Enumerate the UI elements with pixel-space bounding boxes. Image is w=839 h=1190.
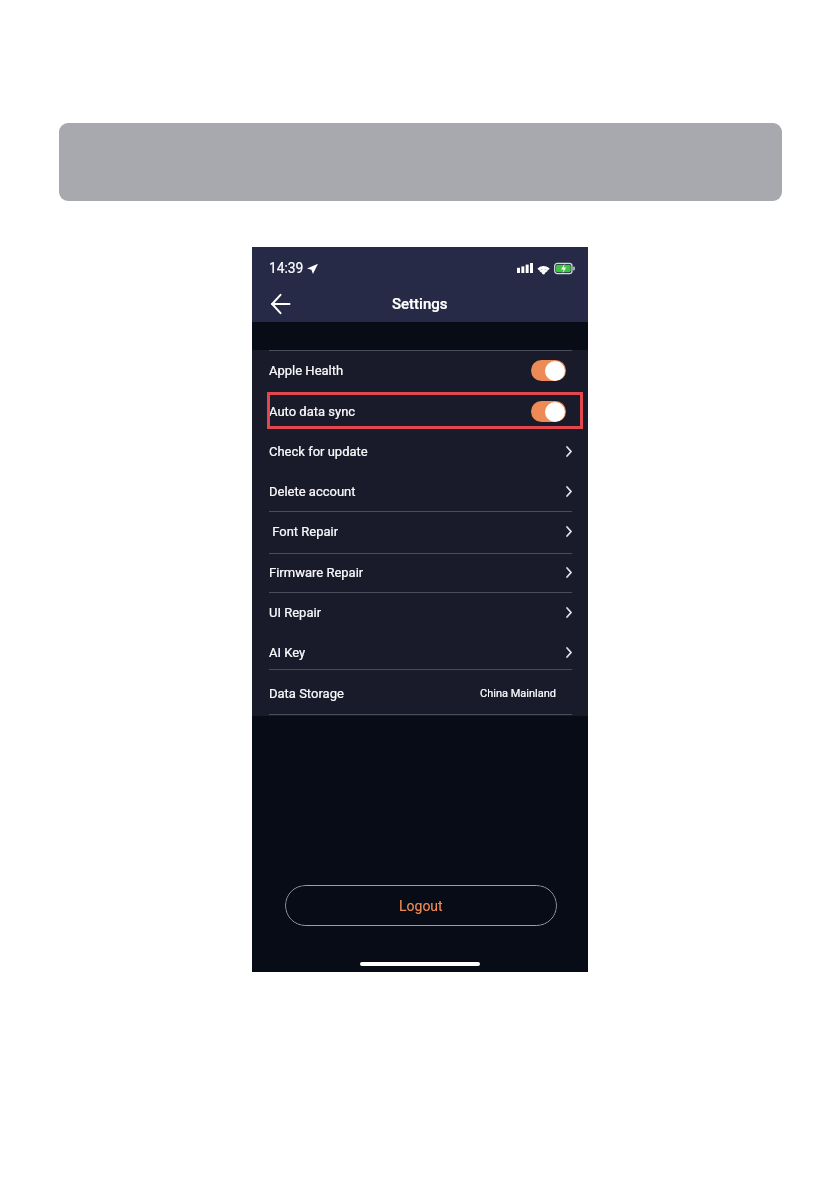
- staticText: Font Repair: [269, 524, 339, 539]
- staticText: China Mainland: [480, 687, 556, 700]
- button[interactable]: Logout: [285, 885, 557, 926]
- staticText: Apple Health: [269, 363, 344, 378]
- button[interactable]: Apple Health: [252, 352, 588, 389]
- other: Battery charging: [554, 263, 575, 274]
- other: Cellular signal: [517, 263, 533, 273]
- other: Wi-Fi: [537, 263, 550, 274]
- button[interactable]: Auto data sync toggle, on: [531, 401, 566, 422]
- button[interactable]: Firmware Repair: [252, 554, 588, 591]
- staticText: Data Storage: [269, 686, 344, 701]
- staticText: 14:39: [269, 260, 304, 276]
- staticText: UI Repair: [269, 605, 322, 620]
- staticText: Firmware Repair: [269, 565, 364, 580]
- button[interactable]: Auto data sync: [252, 393, 588, 430]
- staticText: Settings: [392, 295, 448, 313]
- button[interactable]: UI Repair: [252, 594, 588, 631]
- button[interactable]: AI Key: [252, 634, 588, 671]
- staticText: Delete account: [269, 484, 356, 499]
- staticText: AI Key: [269, 645, 306, 660]
- button[interactable]: Check for update: [252, 433, 588, 470]
- button[interactable]: Apple Health toggle, on: [531, 360, 566, 381]
- staticText: Auto data sync: [269, 404, 356, 419]
- button[interactable]: Font Repair: [252, 513, 588, 550]
- button[interactable]: Delete account: [252, 473, 588, 510]
- staticText: Check for update: [269, 444, 368, 459]
- button[interactable]: Back: [261, 285, 299, 323]
- other: Location active: [307, 263, 318, 274]
- staticText: Logout: [399, 898, 443, 914]
- button[interactable]: Data Storage: [252, 675, 588, 712]
